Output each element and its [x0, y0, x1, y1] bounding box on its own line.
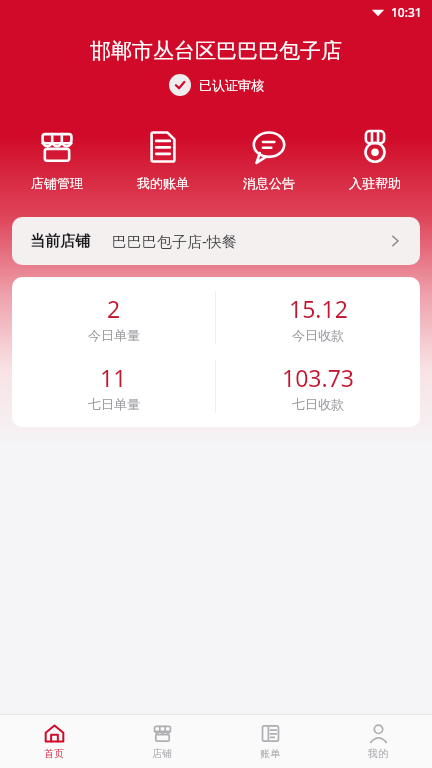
staticText: 15.12 — [289, 293, 348, 324]
staticText: 我的 — [368, 747, 388, 760]
staticText: 103.73 — [282, 362, 354, 393]
button[interactable]: 我的 — [324, 715, 432, 768]
staticText: 七日单量 — [88, 396, 140, 412]
staticText: 七日收款 — [292, 396, 344, 412]
button[interactable]: 我的账单 — [110, 124, 216, 195]
button[interactable]: 103.73 — [216, 352, 420, 421]
staticText: 店铺 — [152, 747, 172, 760]
button[interactable]: 消息公告 — [216, 124, 322, 195]
staticText: 已认证审核 — [199, 77, 264, 93]
staticText: 邯郸市丛台区巴巴巴包子店 — [0, 38, 432, 64]
staticText: 2 — [107, 293, 121, 324]
staticText: 店铺管理 — [31, 175, 83, 191]
staticText: 账单 — [260, 747, 280, 760]
button[interactable]: 2 — [12, 283, 215, 352]
staticText: 当前店铺 — [30, 232, 90, 251]
button[interactable]: 11 — [12, 352, 215, 421]
button[interactable]: 入驻帮助 — [322, 124, 428, 195]
button[interactable]: 店铺管理 — [4, 124, 110, 195]
staticText: 入驻帮助 — [349, 175, 401, 191]
button[interactable]: 账单 — [216, 715, 324, 768]
staticText: 消息公告 — [243, 175, 295, 191]
staticText: 我的账单 — [137, 175, 189, 191]
button[interactable]: 首页 — [0, 715, 108, 768]
staticText: 11 — [100, 362, 127, 393]
button[interactable]: 店铺 — [108, 715, 216, 768]
button[interactable]: 当前店铺 — [12, 217, 420, 265]
staticText: 今日收款 — [292, 327, 344, 343]
staticText: 巴巴巴包子店-快餐 — [112, 231, 237, 251]
staticText: 首页 — [44, 747, 64, 760]
staticText: 10:31 — [391, 4, 422, 20]
button[interactable]: 15.12 — [216, 283, 420, 352]
staticText: 今日单量 — [88, 327, 140, 343]
